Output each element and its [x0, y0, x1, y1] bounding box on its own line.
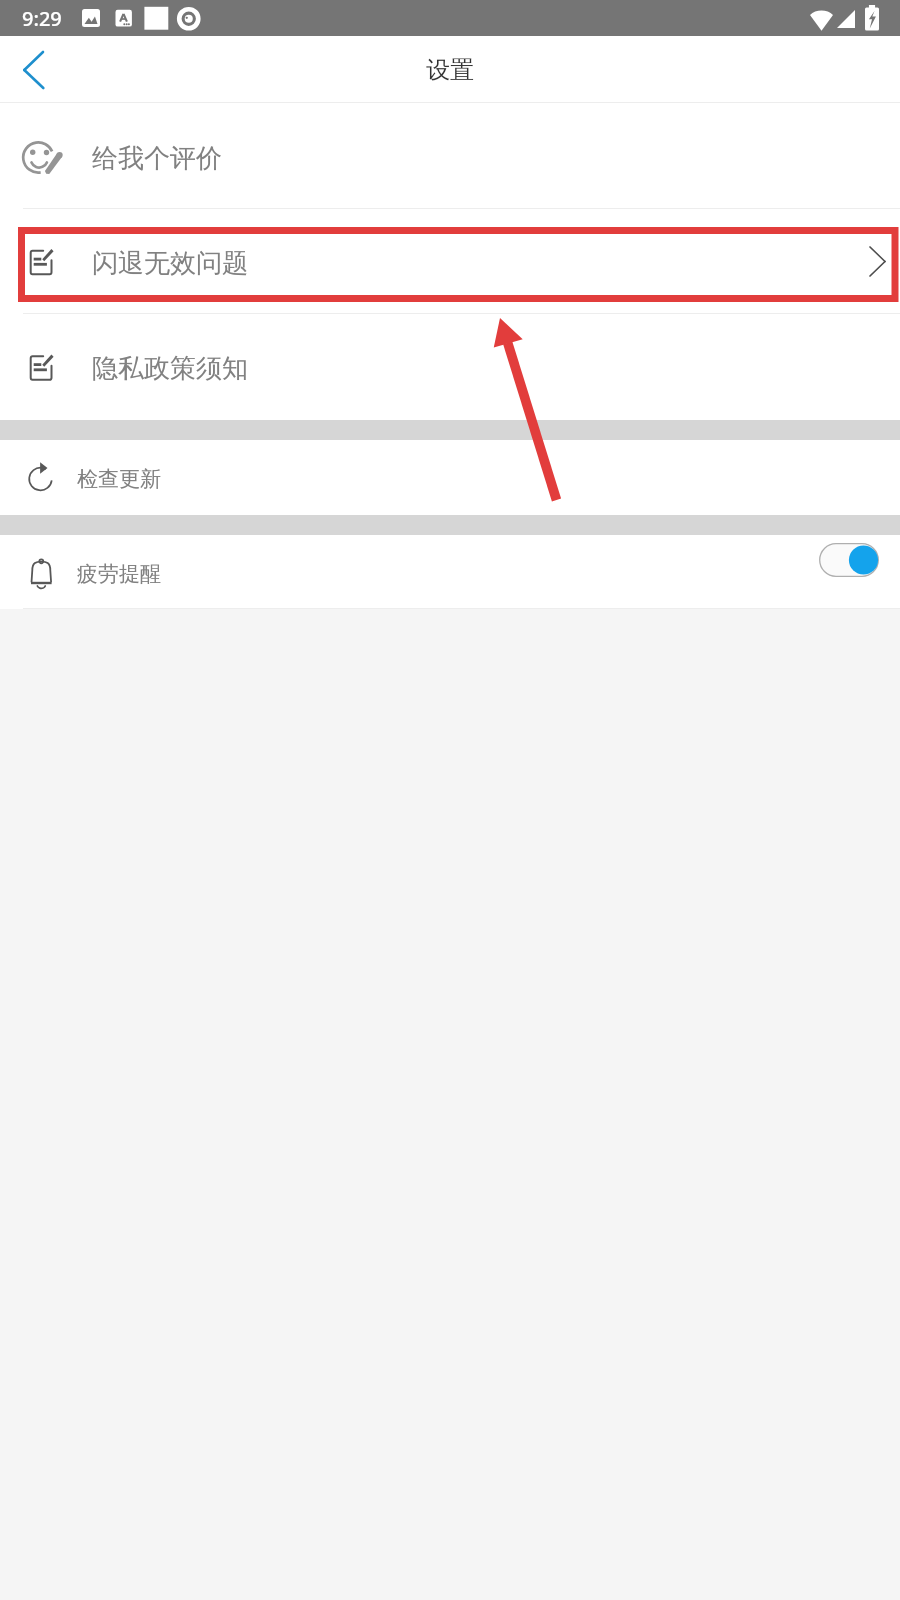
- staticText: 设置: [426, 55, 474, 85]
- button[interactable]: 检查更新: [0, 440, 900, 515]
- button[interactable]: Back: [0, 37, 66, 103]
- button[interactable]: 闪退无效问题: [0, 209, 900, 314]
- button[interactable]: 隐私政策须知: [0, 314, 900, 420]
- button[interactable]: 疲劳提醒: [0, 535, 900, 609]
- staticText: 闪退无效问题: [92, 247, 248, 280]
- staticText: 隐私政策须知: [92, 352, 248, 385]
- button[interactable]: Fatigue reminder toggle: [819, 543, 879, 577]
- staticText: 检查更新: [77, 466, 161, 492]
- staticText: 9:29: [22, 5, 62, 32]
- button[interactable]: 给我个评价: [0, 103, 900, 209]
- staticText: 疲劳提醒: [77, 561, 161, 587]
- staticText: 给我个评价: [92, 142, 222, 175]
